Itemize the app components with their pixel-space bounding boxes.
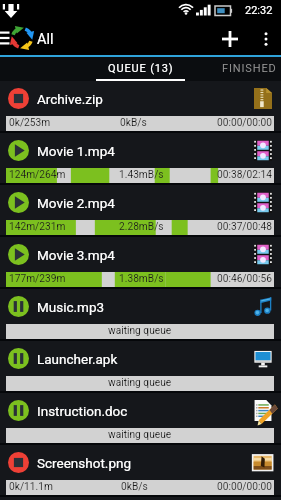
staticText: Archive.zip [37,91,254,107]
staticText: 142m/231m [9,221,66,233]
staticText: waiting queue [108,377,172,389]
staticText: 2.28mB/s [119,221,164,233]
staticText: Screenshot.png [37,455,254,471]
button[interactable]: More options [251,21,281,57]
staticText: Movie 2.mp4 [37,195,254,211]
staticText: 0kB/s [121,481,148,493]
staticText: 00:38/02:14 [217,169,272,181]
button[interactable]: Launcher.apk [0,341,281,393]
button[interactable]: Open navigation drawer [0,21,68,57]
staticText: Music.mp3 [37,299,254,315]
staticText: All [37,31,54,48]
staticText: Movie 1.mp4 [37,143,254,159]
staticText: 00:46/00:56 [217,273,272,285]
staticText: 00:37/00:48 [217,221,272,233]
staticText: 1.43mB/s [119,169,164,181]
button[interactable]: Movie 2.mp4 [0,185,281,237]
button[interactable]: Add download [209,21,251,57]
staticText: QUEUE (13) [108,62,174,75]
staticText: FINISHED [222,62,277,75]
staticText: Instruction.doc [37,403,254,419]
staticText: Launcher.apk [37,351,254,367]
staticText: 00:00/00:00 [217,117,272,129]
button[interactable]: Movie 1.mp4 [0,133,281,185]
button[interactable]: Instruction.doc [0,393,281,445]
staticText: Movie 3.mp4 [37,247,254,263]
staticText: 00:00/00:00 [217,481,272,493]
staticText: waiting queue [108,325,172,337]
staticText: 0kB/s [120,117,147,129]
staticText: 22:32 [245,4,273,17]
staticText: 124m/264m [9,169,66,181]
button[interactable]: Movie 3.mp4 [0,237,281,289]
staticText: 0k/11.1m [9,481,53,493]
button[interactable]: Archive.zip [0,81,281,133]
button[interactable]: QUEUE (13) [96,57,185,81]
staticText: 177m/239m [9,273,66,285]
staticText: 0k/253m [9,117,51,129]
button[interactable]: Music.mp3 [0,289,281,341]
button[interactable]: FINISHED [185,57,281,81]
button[interactable]: Screenshot.png [0,445,281,497]
staticText: 1.38mB/s [119,273,164,285]
staticText: waiting queue [108,429,172,441]
